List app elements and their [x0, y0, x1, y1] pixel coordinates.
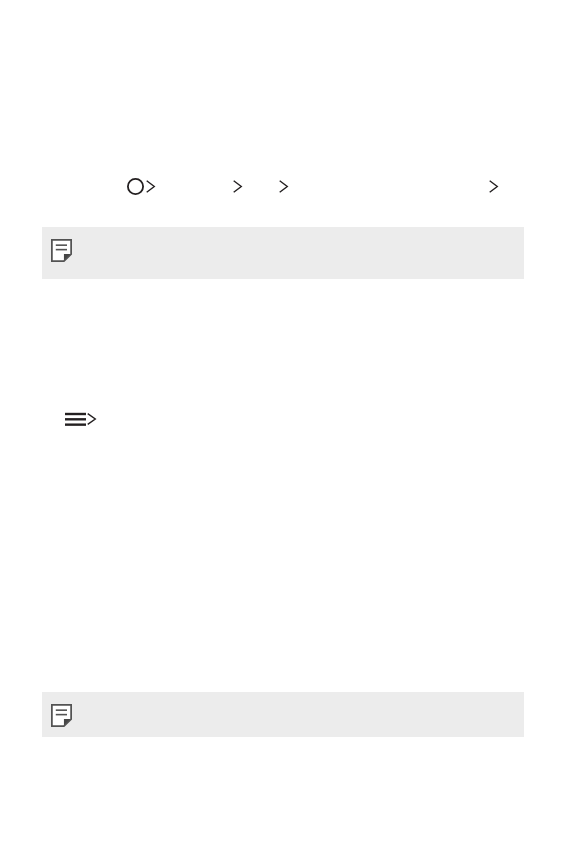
button[interactable]: Expand outline — [65, 411, 95, 427]
button[interactable]: Folder — [277, 178, 289, 195]
button[interactable]: Workspace — [144, 178, 156, 195]
button[interactable]: Section — [231, 178, 243, 195]
button[interactable]: Note — [42, 227, 524, 279]
button[interactable]: Home — [126, 177, 144, 195]
button[interactable]: This page — [487, 178, 499, 195]
button[interactable]: Note — [42, 692, 524, 737]
